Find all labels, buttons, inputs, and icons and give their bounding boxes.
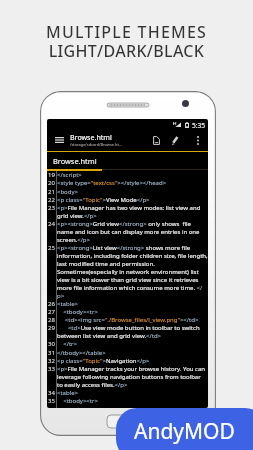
staticText: <p class="Topic">View Mode</p> <box>57 196 150 204</box>
button[interactable]: Navigation drawer <box>49 129 69 151</box>
staticText: <style type="text/css"></style></head> <box>57 179 167 187</box>
staticText: 22 <box>48 196 55 204</box>
staticText: <td>Use view mode button in toolbar to s… <box>57 324 200 332</box>
staticText: AndyMOD <box>134 417 235 446</box>
staticText: name and icon but can display more entri… <box>57 228 200 236</box>
staticText: to easily access files.</p> <box>57 381 128 389</box>
staticText: <body> <box>57 188 78 196</box>
staticText: </tr> <box>57 340 77 348</box>
button[interactable]: Browse.html <box>47 152 208 169</box>
staticText: p> <box>57 292 65 300</box>
staticText: Browse.html <box>70 132 112 142</box>
staticText: <table> <box>57 389 79 397</box>
staticText: 28 <box>48 316 55 324</box>
staticText: 29 <box>48 324 55 332</box>
staticText: <p>File Manager tracks your browse histo… <box>57 365 205 373</box>
staticText: <td><img src="./Browse_files/l_view.png"… <box>57 316 199 324</box>
staticText: leverage following navigation buttons fr… <box>57 373 201 381</box>
button[interactable]: AndyMOD <box>116 408 253 450</box>
staticText: 31 <box>48 349 55 357</box>
staticText: <p><strong>List view</strong> shows more… <box>57 244 191 252</box>
staticText: <tbody><tr> <box>57 308 98 316</box>
staticText: grid view.</p> <box>57 212 97 220</box>
staticText: 25 <box>48 244 55 252</box>
staticText: </tbody></table> <box>57 349 106 357</box>
staticText: 30 <box>48 340 55 348</box>
staticText: 26 <box>48 300 55 308</box>
staticText: </script> <box>57 171 82 179</box>
staticText: MULTIPLE THEMES <box>0 21 253 43</box>
staticText: view is a bit slower than grid view sinc… <box>57 276 199 284</box>
staticText: more file information which consume more… <box>57 284 203 292</box>
staticText: 23 <box>48 204 55 212</box>
button[interactable]: Edit <box>165 130 185 150</box>
staticText: 35 <box>48 397 55 405</box>
staticText: Browse.html <box>53 156 97 166</box>
staticText: /storage/sdcard/Browse.ht... <box>70 142 122 147</box>
staticText: 24 <box>48 220 55 228</box>
staticText: last modified time and permission. <box>57 260 155 268</box>
staticText: <p class="Topic">Navigation</p> <box>57 357 150 365</box>
staticText: 5:35 <box>192 121 206 130</box>
staticText: screen.</p> <box>57 236 90 244</box>
staticText: LIGHT/DARK/BLACK <box>0 40 253 62</box>
button[interactable]: More options <box>189 130 206 150</box>
staticText: 32 <box>48 357 55 365</box>
staticText: 33 <box>48 365 55 373</box>
button[interactable]: New document <box>146 130 166 150</box>
staticText: <table> <box>57 300 79 308</box>
staticText: <p><strong>Grid view</strong> only shows… <box>57 220 191 228</box>
staticText: Sometimes(especially in network environm… <box>57 268 199 276</box>
staticText: <p>File Manager has two view modes: list… <box>57 204 201 212</box>
staticText: between list view and grid view.</td> <box>57 332 162 340</box>
staticText: information, including folder children s… <box>57 252 208 260</box>
staticText: 19 <box>48 171 55 179</box>
staticText: 27 <box>48 308 55 316</box>
staticText: <tbody><tr> <box>57 397 98 405</box>
staticText: 34 <box>48 389 55 397</box>
staticText: 20 <box>48 179 55 187</box>
staticText: 21 <box>48 188 55 196</box>
